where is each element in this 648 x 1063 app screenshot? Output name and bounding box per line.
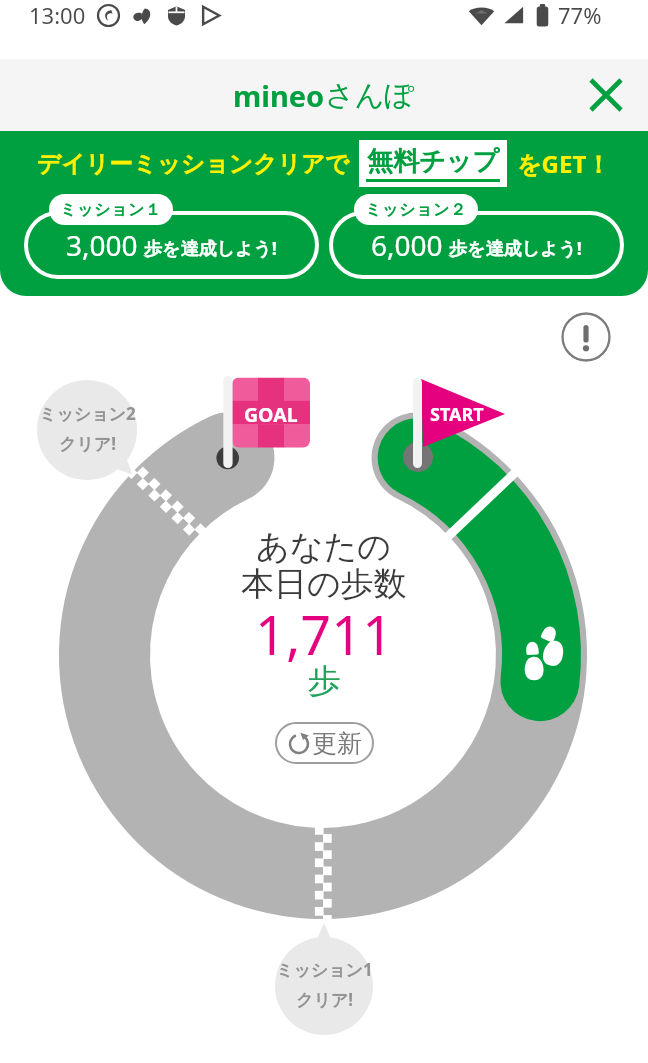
staticText: 歩を達成しよう! bbox=[449, 236, 582, 261]
button[interactable]: Information bbox=[561, 312, 611, 362]
button[interactable]: 6,000 bbox=[329, 211, 624, 279]
staticText: 本日の歩数 bbox=[241, 563, 407, 605]
staticText: 歩を達成しよう! bbox=[144, 236, 277, 261]
staticText: さんぽ bbox=[325, 77, 415, 114]
staticText: 13:00 bbox=[29, 0, 86, 30]
staticText: GOAL bbox=[244, 401, 298, 428]
button[interactable]: ミッション1 bbox=[264, 958, 384, 1011]
staticText: ミッション１ bbox=[60, 200, 162, 220]
staticText: 3,000 bbox=[66, 226, 138, 264]
staticText: をGET！ bbox=[517, 147, 611, 180]
staticText: クリア! bbox=[296, 988, 353, 1011]
staticText: 77% bbox=[558, 0, 602, 30]
button[interactable]: 3,000 bbox=[24, 211, 319, 279]
staticText: 1,711 bbox=[255, 597, 394, 671]
staticText: 更新 bbox=[312, 728, 362, 759]
staticText: 歩 bbox=[308, 660, 341, 702]
button[interactable]: Close bbox=[580, 69, 632, 121]
staticText: mineo bbox=[233, 76, 325, 115]
staticText: 無料チップ bbox=[367, 145, 499, 178]
button[interactable]: 更新 bbox=[275, 722, 374, 764]
staticText: 6,000 bbox=[371, 226, 443, 264]
staticText: あなたの bbox=[256, 526, 392, 568]
staticText: クリア! bbox=[59, 432, 116, 455]
staticText: ミッション2 bbox=[39, 402, 136, 425]
staticText: ミッション1 bbox=[276, 958, 373, 981]
staticText: デイリーミッションクリアで bbox=[37, 149, 350, 179]
button[interactable]: ミッション2 bbox=[27, 402, 147, 455]
staticText: START bbox=[430, 402, 484, 427]
staticText: ミッション２ bbox=[365, 200, 467, 220]
